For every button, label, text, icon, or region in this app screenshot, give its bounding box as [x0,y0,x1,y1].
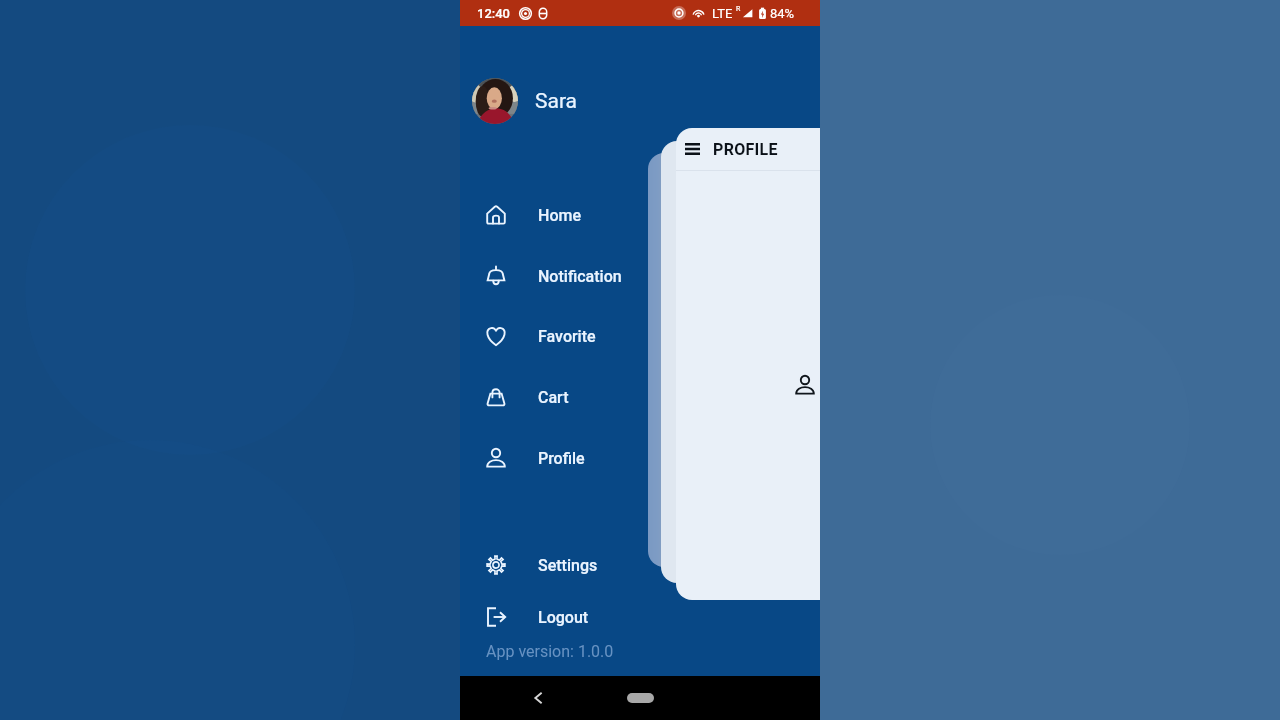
button[interactable]: Notification [460,250,820,302]
button[interactable]: Home [460,189,820,241]
staticText: Sara [535,89,578,114]
staticText: PROFILE [713,140,778,159]
button[interactable]: Cart [460,371,820,423]
button[interactable]: Sara [460,75,820,127]
staticText: Home [538,206,581,225]
staticText: Profile [538,449,585,468]
staticText: 84% [770,6,795,21]
staticText: Favorite [538,327,596,346]
button[interactable]: Open navigation drawer [685,142,700,156]
button[interactable]: Home gesture [618,688,662,708]
staticText: Logout [538,608,589,627]
staticText: App version: 1.0.0 [486,642,614,661]
staticText: Cart [538,388,569,407]
button[interactable]: Back [524,684,552,712]
button[interactable]: Logout [460,591,820,643]
button[interactable]: Favorite [460,310,820,362]
staticText: Settings [538,556,598,575]
staticText: R [736,5,741,13]
staticText: Notification [538,267,622,286]
button[interactable]: Settings [460,539,820,591]
staticText: LTE [712,6,733,21]
button[interactable]: Profile [460,432,820,484]
staticText: 12:40 [477,6,511,21]
